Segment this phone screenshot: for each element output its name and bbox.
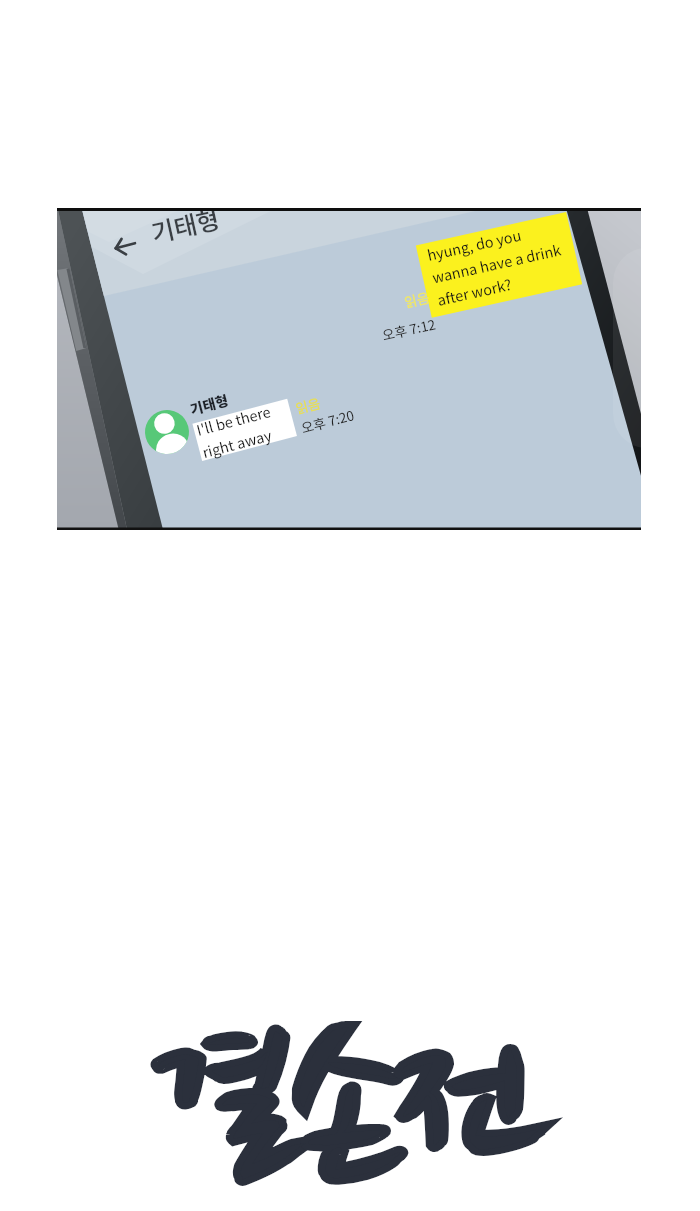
other: 결손전 (150, 1021, 564, 1187)
button[interactable]: hyung, do you wanna have a drink after w… (416, 218, 582, 318)
button[interactable]: Back (106, 232, 142, 266)
button[interactable]: I'll be there right away 오후 7:20 읽음 (190, 390, 352, 452)
button[interactable]: 기태형 프로필 (145, 408, 189, 452)
button[interactable]: 기태형 (147, 214, 225, 246)
